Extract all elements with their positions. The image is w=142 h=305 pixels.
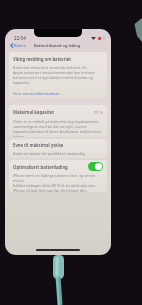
staticText: Batteri	[14, 43, 27, 48]
button[interactable]: Batteri	[5, 43, 29, 48]
staticText: Batteriet støtter for øyeblikket nødvend…	[13, 151, 103, 158]
staticText: Maksimal kapasitet	[13, 109, 54, 115]
staticText: iPhone lærer av ladingsrutinene dine, og…	[13, 173, 103, 192]
staticText: Finn servicealternativer	[13, 90, 60, 96]
staticText: 79 %	[94, 110, 103, 115]
staticText: Batteritilstand og lading	[34, 43, 81, 48]
button[interactable]: Finn servicealternativer	[13, 90, 103, 96]
staticText: 22:54	[14, 35, 26, 41]
staticText: Dette er et måltall på batteriets lagrin…	[13, 119, 103, 137]
staticText: Viktig melding om batteriet	[13, 56, 71, 62]
staticText: Optimalisert batterilading	[13, 164, 68, 170]
staticText: Batteriets tilstand er vesentlig reduser…	[13, 65, 95, 85]
button[interactable]: Optimalisert batterilading på	[88, 162, 103, 171]
staticText: Evne til maksimal ytelse	[13, 142, 64, 148]
